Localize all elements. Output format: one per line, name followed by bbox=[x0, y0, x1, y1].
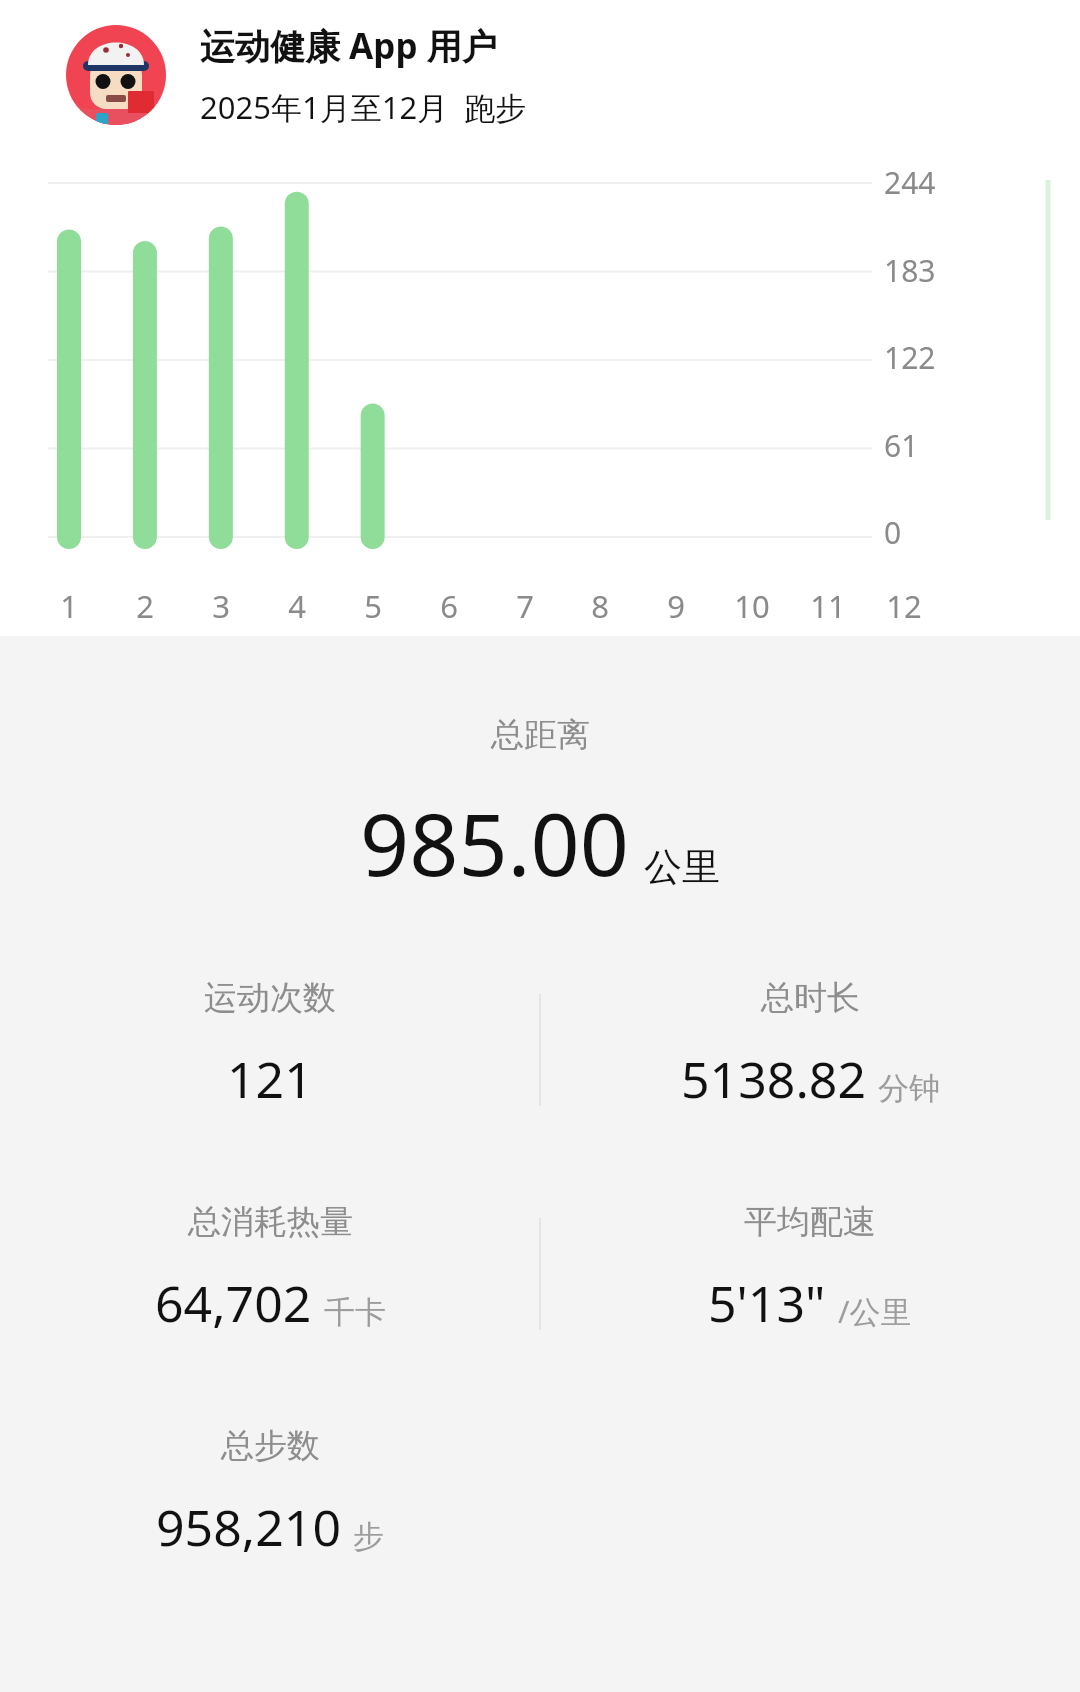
staticText: 4 bbox=[274, 585, 320, 627]
staticText: 958,210 bbox=[156, 1493, 341, 1561]
staticText: 总距离 bbox=[491, 714, 590, 756]
button[interactable]: 总步数 bbox=[0, 1413, 540, 1573]
staticText: 1 bbox=[46, 585, 92, 627]
staticText: 步 bbox=[353, 1517, 384, 1556]
staticText: 总时长 bbox=[761, 977, 860, 1019]
staticText: 122 bbox=[884, 337, 936, 378]
staticText: 5138.82 bbox=[681, 1045, 866, 1113]
button[interactable]: 平均配速 bbox=[540, 1189, 1080, 1349]
staticText: 183 bbox=[884, 250, 936, 291]
staticText: 运动次数 bbox=[204, 977, 336, 1019]
button[interactable]: 总时长 bbox=[540, 965, 1080, 1125]
staticText: 985.00 bbox=[360, 784, 630, 901]
staticText: 244 bbox=[884, 162, 936, 203]
staticText: 121 bbox=[227, 1045, 313, 1113]
button[interactable]: 用户头像 bbox=[66, 22, 1040, 128]
staticText: 64,702 bbox=[155, 1269, 312, 1337]
staticText: 公里 bbox=[644, 843, 720, 891]
staticText: 11 bbox=[805, 585, 851, 627]
button[interactable]: 运动次数 bbox=[0, 965, 540, 1125]
button[interactable]: 总消耗热量 bbox=[0, 1189, 540, 1349]
staticText: 2025年1月至12月 跑步 bbox=[200, 86, 527, 128]
staticText: /公里 bbox=[838, 1290, 912, 1332]
staticText: 3 bbox=[198, 585, 244, 627]
staticText: 运动健康 App 用户 bbox=[200, 22, 497, 70]
staticText: 8 bbox=[577, 585, 623, 627]
staticText: 分钟 bbox=[878, 1069, 940, 1108]
staticText: 5'13" bbox=[708, 1269, 826, 1337]
staticText: 2 bbox=[122, 585, 168, 627]
staticText: 12 bbox=[881, 585, 927, 627]
staticText: 总步数 bbox=[221, 1425, 320, 1467]
staticText: 0 bbox=[884, 512, 902, 553]
staticText: 千卡 bbox=[324, 1293, 386, 1332]
staticText: 7 bbox=[502, 585, 548, 627]
staticText: 61 bbox=[884, 425, 919, 466]
staticText: 总消耗热量 bbox=[188, 1201, 353, 1243]
staticText: 5 bbox=[350, 585, 396, 627]
button[interactable]: 用户头像 bbox=[66, 25, 166, 125]
staticText: 平均配速 bbox=[744, 1201, 876, 1243]
staticText: 6 bbox=[426, 585, 472, 627]
staticText: 10 bbox=[729, 585, 775, 627]
staticText: 9 bbox=[653, 585, 699, 627]
